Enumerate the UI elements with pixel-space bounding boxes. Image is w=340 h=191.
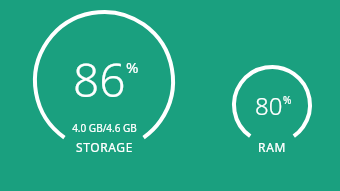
staticText: 80 <box>255 89 283 122</box>
button[interactable]: RAM <box>222 138 322 156</box>
staticText: RAM <box>258 139 286 155</box>
button[interactable]: Storage usage 86 percent <box>33 10 175 152</box>
button[interactable]: RAM usage 80 percent <box>232 65 312 145</box>
staticText: 4.0 GB/4.6 GB <box>72 121 137 135</box>
staticText: STORAGE <box>76 139 133 155</box>
staticText: 86 <box>73 48 126 111</box>
staticText: % <box>126 57 139 77</box>
staticText: % <box>283 93 292 107</box>
button[interactable]: STORAGE <box>24 138 184 156</box>
